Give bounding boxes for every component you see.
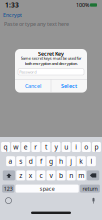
staticText: p	[94, 143, 98, 151]
button[interactable]: x	[26, 170, 35, 180]
button[interactable]: z	[16, 170, 25, 180]
button[interactable]: 123	[2, 185, 14, 193]
staticText: t	[45, 143, 47, 151]
button[interactable]: p	[92, 142, 101, 152]
staticText: 123	[4, 185, 13, 192]
staticText: d	[29, 157, 33, 166]
staticText: u	[64, 143, 68, 151]
staticText: space	[40, 185, 55, 192]
staticText: b	[59, 171, 63, 180]
button[interactable]: v	[46, 170, 55, 180]
button[interactable]: k	[77, 156, 86, 166]
button[interactable]: space	[16, 185, 79, 193]
button[interactable]: g	[46, 156, 55, 166]
staticText: e	[24, 143, 28, 151]
staticText: Same secret keys must be used for both e…	[20, 55, 81, 66]
button[interactable]: m	[77, 170, 86, 180]
button[interactable]: l	[87, 156, 96, 166]
staticText: Paste or type any text here	[4, 20, 69, 28]
button[interactable]: j	[67, 156, 76, 166]
staticText: g	[49, 157, 53, 166]
staticText: z	[19, 171, 22, 180]
button[interactable]: w	[11, 142, 20, 152]
staticText: n	[69, 171, 73, 180]
staticText: h	[59, 157, 63, 166]
staticText: x	[29, 171, 33, 180]
staticText: Secret Key	[38, 50, 64, 57]
button[interactable]: e	[21, 142, 30, 152]
staticText: m	[78, 171, 84, 180]
button[interactable]: s	[16, 156, 25, 166]
staticText: r	[34, 143, 37, 151]
button[interactable]: r	[31, 142, 40, 152]
button[interactable]: Delete	[87, 170, 99, 180]
staticText: 100%	[76, 1, 89, 9]
staticText: return	[82, 185, 97, 192]
staticText: c	[39, 171, 42, 180]
button[interactable]: Dictate	[88, 197, 99, 205]
staticText: j	[70, 157, 72, 166]
staticText: o	[84, 143, 88, 151]
staticText: l	[90, 157, 92, 166]
button[interactable]: b	[57, 170, 65, 180]
button[interactable]: Cancel	[15, 79, 51, 93]
button[interactable]: Shift	[3, 170, 15, 180]
button[interactable]: n	[67, 170, 76, 180]
staticText: s	[19, 157, 22, 166]
button[interactable]: c	[36, 170, 45, 180]
button[interactable]: Encrypt	[0, 10, 25, 19]
button[interactable]: h	[57, 156, 65, 166]
staticText: v	[49, 171, 52, 180]
button[interactable]: d	[26, 156, 35, 166]
staticText: w	[13, 143, 18, 151]
staticText: i	[75, 143, 77, 151]
staticText: 1:33	[5, 1, 19, 9]
button[interactable]: u	[62, 142, 71, 152]
staticText: Select	[61, 82, 77, 90]
staticText: Cancel	[25, 82, 41, 90]
staticText: f	[40, 157, 42, 166]
staticText: a	[9, 157, 13, 166]
button[interactable]: o	[82, 142, 91, 152]
button[interactable]: a	[6, 156, 15, 166]
button[interactable]: y	[52, 142, 60, 152]
staticText: y	[54, 143, 57, 151]
staticText: Password	[19, 69, 36, 74]
button[interactable]: i	[72, 142, 81, 152]
button[interactable]: Select	[51, 79, 87, 93]
button[interactable]: f	[36, 156, 45, 166]
button[interactable]: Emoji	[3, 197, 14, 205]
button[interactable]: return	[80, 185, 100, 193]
staticText: k	[79, 157, 83, 166]
staticText: Encrypt	[3, 11, 22, 19]
staticText: q	[3, 143, 7, 151]
button[interactable]: q	[1, 142, 10, 152]
button[interactable]: t	[41, 142, 50, 152]
